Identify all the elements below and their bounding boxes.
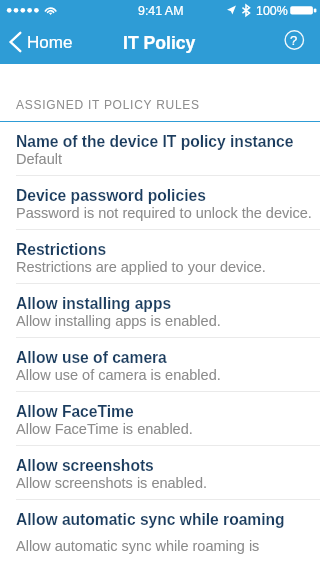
button[interactable]: Allow FaceTime: [0, 392, 320, 446]
button[interactable]: Home: [8, 31, 73, 53]
staticText: ASSIGNED IT POLICY RULES: [16, 98, 200, 111]
staticText: Allow installing apps is enabled.: [16, 313, 221, 329]
staticText: Allow use of camera: [16, 349, 167, 366]
button[interactable]: Allow use of camera: [0, 338, 320, 392]
staticText: Allow screenshots is enabled.: [16, 475, 208, 491]
staticText: ?: [290, 33, 298, 48]
button[interactable]: Restrictions: [0, 230, 320, 284]
staticText: 100%: [256, 4, 288, 18]
staticText: Password is not required to unlock the d…: [16, 205, 312, 221]
staticText: Home: [27, 33, 73, 52]
button[interactable]: Allow screenshots: [0, 446, 320, 500]
staticText: Allow automatic sync while roaming: [16, 511, 285, 528]
button[interactable]: Device password policies: [0, 176, 320, 230]
staticText: Restrictions are applied to your device.: [16, 259, 266, 275]
staticText: Allow FaceTime: [16, 403, 134, 420]
staticText: 9:41 AM: [138, 4, 184, 18]
staticText: Allow use of camera is enabled.: [16, 367, 221, 383]
staticText: Default: [16, 151, 62, 167]
staticText: Allow screenshots: [16, 457, 154, 474]
button[interactable]: Allow installing apps: [0, 284, 320, 338]
button[interactable]: Allow automatic sync while roaming: [0, 500, 320, 554]
staticText: Device password policies: [16, 187, 206, 204]
staticText: Restrictions: [16, 241, 107, 258]
button[interactable]: Help: [282, 28, 306, 52]
staticText: Name of the device IT policy instance: [16, 133, 294, 150]
button[interactable]: Name of the device IT policy instance: [0, 122, 320, 176]
staticText: IT Policy: [123, 33, 196, 53]
staticText: Allow installing apps: [16, 295, 172, 312]
staticText: Allow automatic sync while roaming is en…: [16, 538, 312, 554]
staticText: Allow FaceTime is enabled.: [16, 421, 193, 437]
